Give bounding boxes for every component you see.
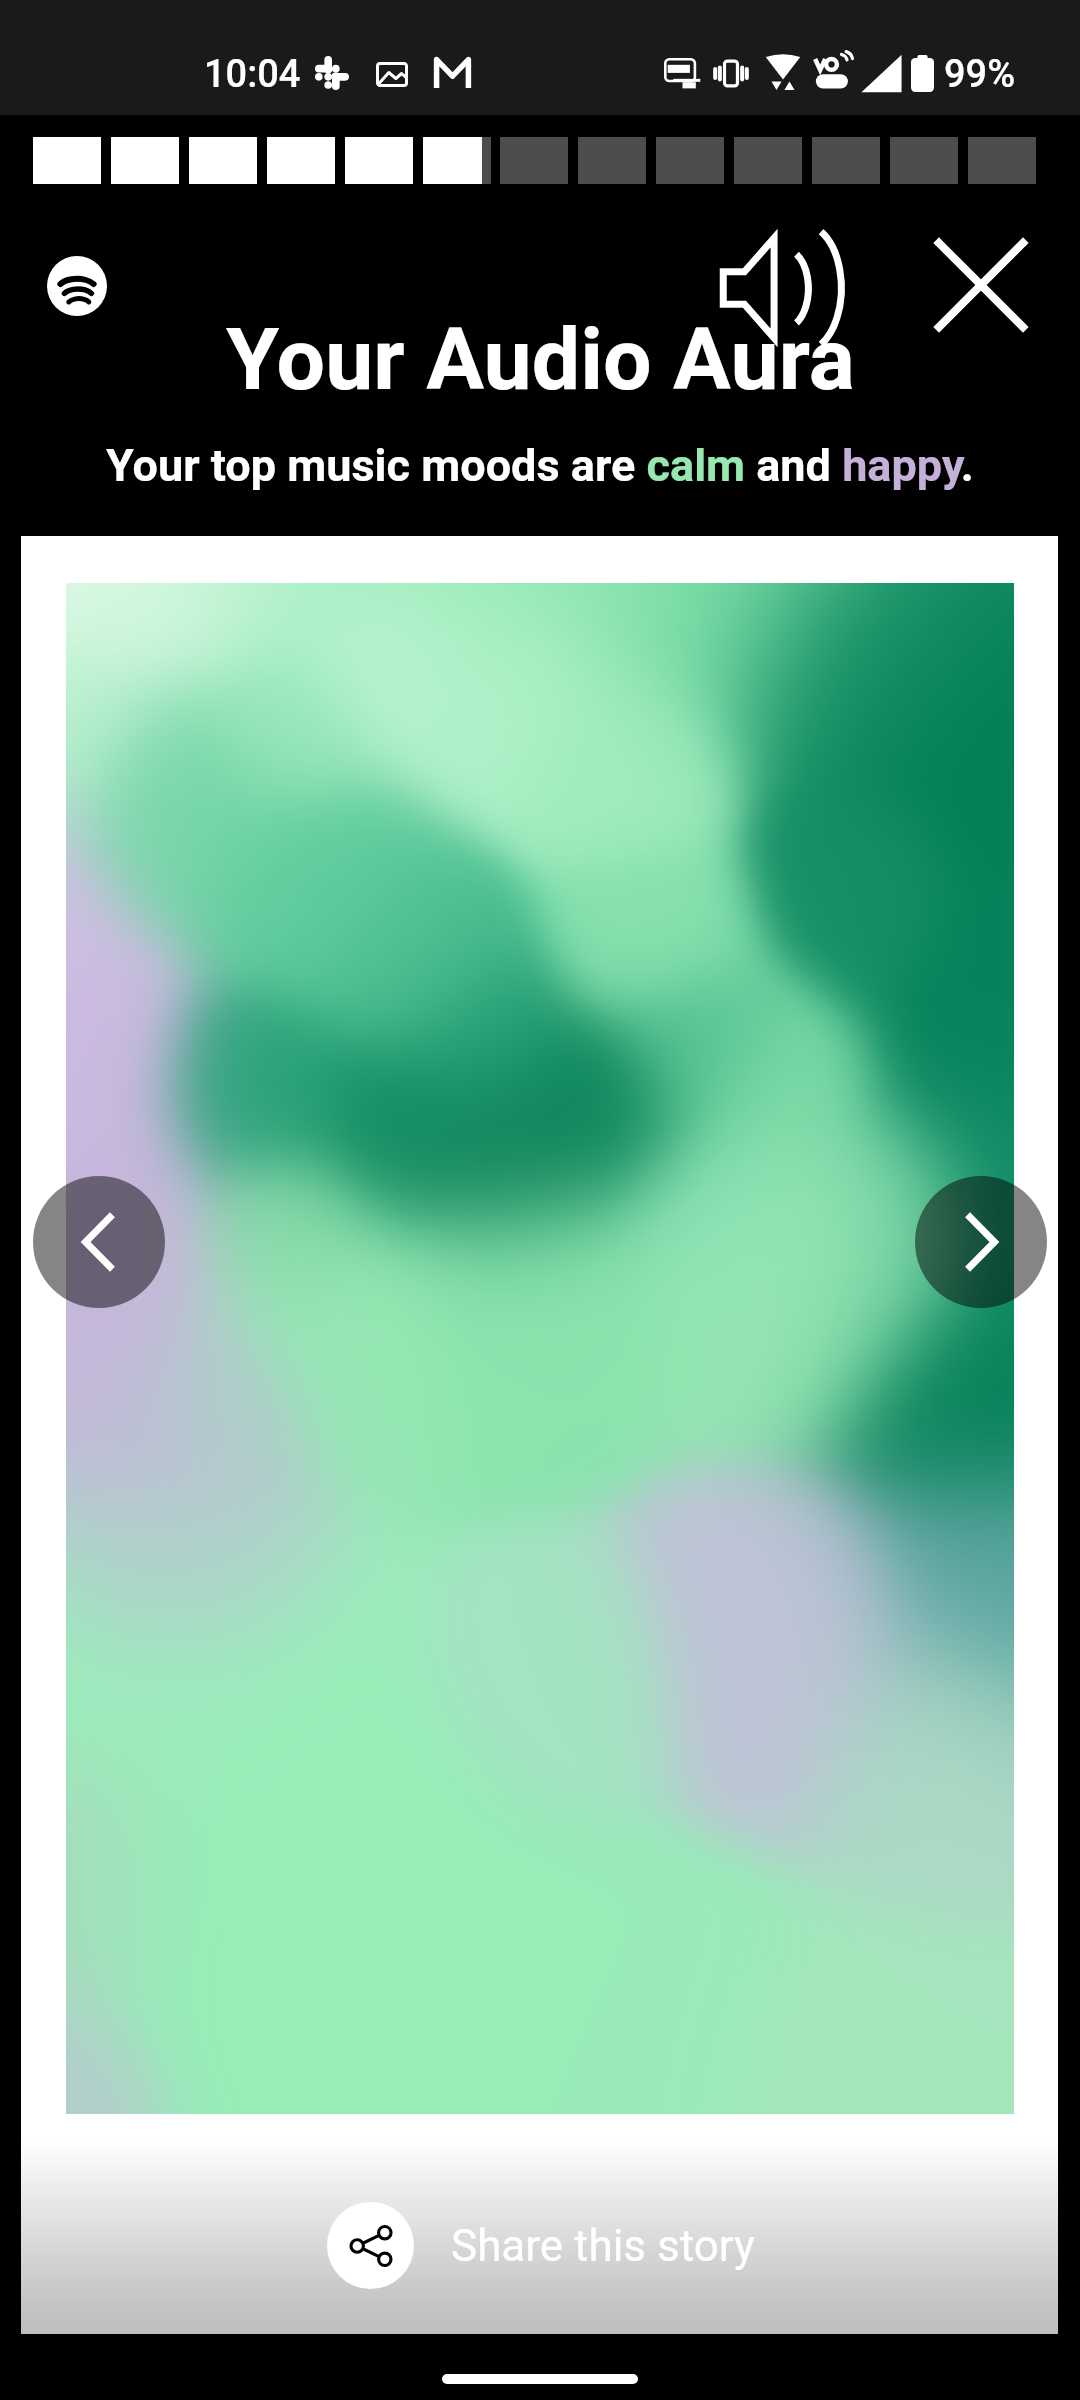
staticText: Your top music moods are calm and happy.	[106, 439, 974, 492]
button[interactable]: Spotify	[35, 244, 119, 328]
staticText: 10:04	[204, 52, 301, 97]
button[interactable]: Close	[917, 221, 1045, 349]
button[interactable]: Next	[915, 1176, 1047, 1308]
staticText: Your Audio Aura	[226, 309, 855, 410]
button[interactable]: Story 6	[423, 137, 491, 184]
button[interactable]: Share this story	[327, 2202, 755, 2289]
staticText: 99%	[944, 52, 1016, 97]
staticText: Share this story	[451, 2220, 755, 2272]
button[interactable]: Mute	[716, 230, 848, 346]
button[interactable]: Previous	[33, 1176, 165, 1308]
